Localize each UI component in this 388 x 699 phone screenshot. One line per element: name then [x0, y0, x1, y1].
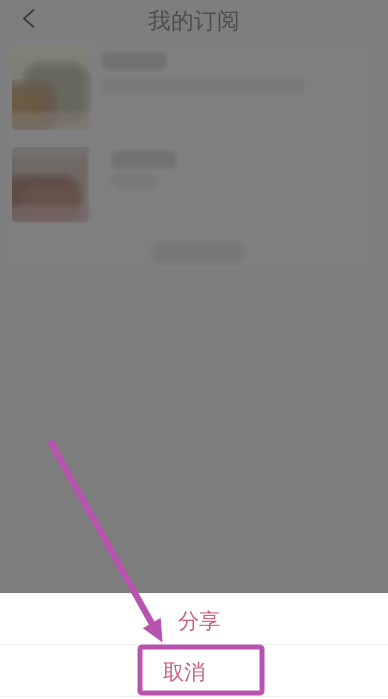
button[interactable]: Back — [0, 0, 46, 42]
staticText: 我的订阅 — [148, 7, 240, 35]
button[interactable]: 分享 — [0, 593, 388, 644]
staticText: 取消 — [163, 659, 205, 685]
staticText: 分享 — [178, 608, 220, 634]
button[interactable]: 取消 — [0, 645, 388, 696]
